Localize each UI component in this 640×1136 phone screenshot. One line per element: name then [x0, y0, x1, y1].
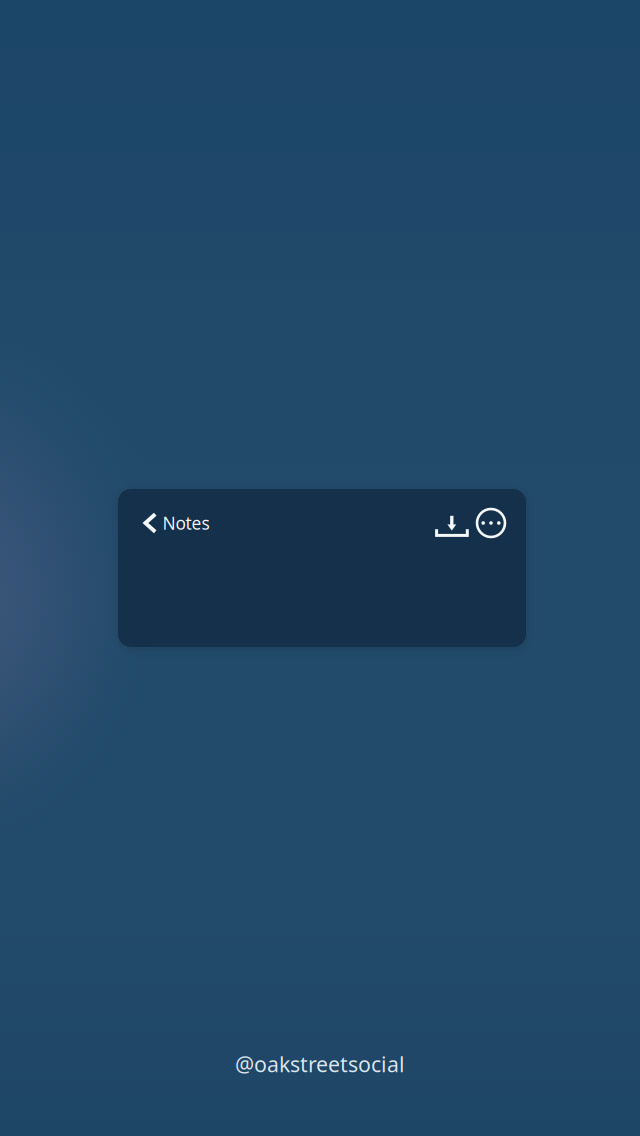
button[interactable]: Save note	[434, 505, 470, 539]
button[interactable]: Notes	[143, 506, 221, 540]
staticText: @oakstreetsocial	[235, 1050, 405, 1078]
staticText: Notes	[162, 511, 209, 534]
button[interactable]: More options	[475, 507, 507, 539]
